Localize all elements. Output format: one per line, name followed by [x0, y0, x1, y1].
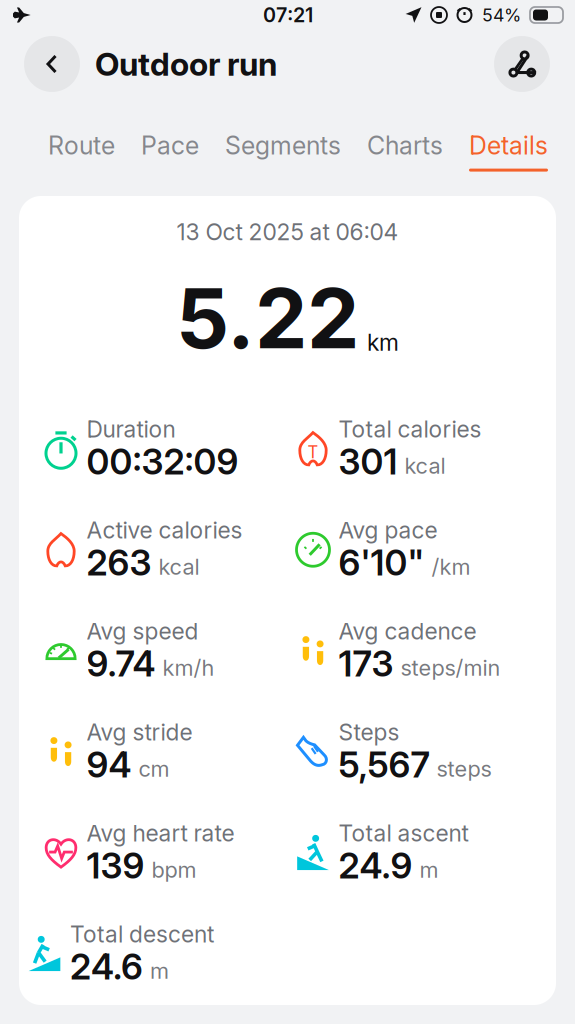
staticText: 173 — [338, 642, 393, 685]
button[interactable]: Pace — [141, 122, 199, 172]
staticText: Steps — [338, 718, 399, 746]
button[interactable]: Route — [48, 122, 115, 172]
button[interactable]: Charts — [367, 122, 443, 172]
staticText: Route — [48, 130, 115, 161]
staticText: m — [150, 958, 169, 984]
staticText: Total ascent — [338, 819, 468, 847]
staticText: Active calories — [86, 516, 242, 544]
staticText: Segments — [225, 130, 341, 161]
staticText: T — [307, 442, 318, 462]
staticText: 13 Oct 2025 at 06:04 — [176, 218, 398, 246]
staticText: steps — [436, 756, 491, 782]
staticText: Avg speed — [86, 617, 198, 645]
button[interactable]: Share — [494, 36, 550, 92]
staticText: /km — [431, 554, 470, 580]
staticText: 5,567 — [338, 743, 429, 786]
staticText: 5.22 — [176, 268, 359, 368]
staticText: Details — [469, 130, 548, 161]
staticText: steps/min — [400, 655, 500, 681]
staticText: 263 — [86, 541, 151, 584]
staticText: 07:21 — [263, 3, 313, 27]
staticText: Avg cadence — [338, 617, 476, 645]
staticText: 6'10" — [338, 541, 424, 584]
staticText: kcal — [404, 453, 445, 479]
staticText: Pace — [141, 130, 199, 161]
staticText: Outdoor run — [95, 44, 277, 83]
staticText: Duration — [86, 415, 175, 443]
staticText: Total descent — [70, 920, 214, 948]
button[interactable]: Details — [469, 122, 548, 172]
staticText: cm — [138, 756, 169, 782]
button[interactable]: Back — [24, 36, 80, 92]
staticText: km/h — [162, 655, 214, 681]
staticText: 24.9 — [338, 844, 412, 887]
staticText: Avg heart rate — [86, 819, 234, 847]
staticText: 54% — [482, 4, 521, 26]
staticText: m — [419, 857, 438, 883]
staticText: Avg stride — [86, 718, 192, 746]
button[interactable]: Outdoor run — [80, 35, 277, 92]
staticText: bpm — [151, 857, 196, 883]
staticText: kcal — [158, 554, 199, 580]
staticText: km — [367, 329, 399, 356]
staticText: Total calories — [338, 415, 481, 443]
staticText: 00:32:09 — [86, 440, 238, 483]
staticText: Avg pace — [338, 516, 437, 544]
button[interactable]: Segments — [225, 122, 341, 172]
staticText: 139 — [86, 844, 144, 887]
staticText: 9.74 — [86, 642, 155, 685]
staticText: 94 — [86, 743, 131, 786]
staticText: 24.6 — [70, 945, 143, 988]
staticText: Charts — [367, 130, 443, 161]
staticText: 301 — [338, 440, 397, 483]
